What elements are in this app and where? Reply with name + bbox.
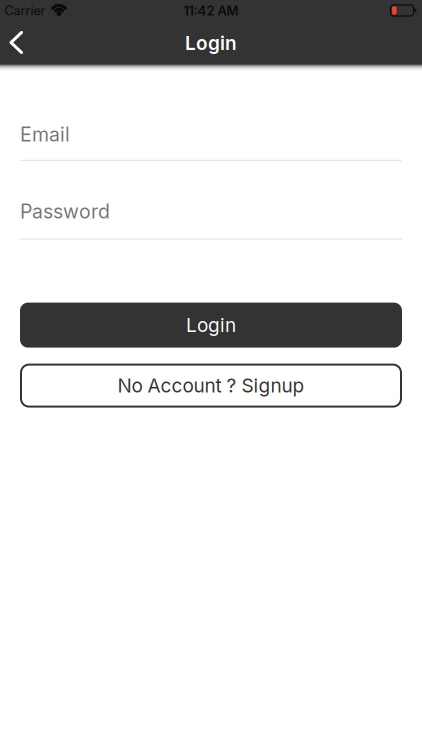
staticText: 11:42 AM xyxy=(183,3,238,18)
button[interactable]: Email xyxy=(20,123,402,161)
staticText: Login xyxy=(185,31,237,54)
staticText: Email xyxy=(20,123,70,146)
staticText: Carrier xyxy=(4,3,45,18)
button[interactable]: Back xyxy=(0,22,36,64)
staticText: Password xyxy=(20,200,110,223)
button[interactable]: No Account ? Signup xyxy=(20,364,402,408)
button[interactable]: Login xyxy=(20,303,402,348)
button[interactable]: Password xyxy=(20,200,402,240)
staticText: No Account ? Signup xyxy=(117,374,304,397)
staticText: Login xyxy=(186,314,236,337)
